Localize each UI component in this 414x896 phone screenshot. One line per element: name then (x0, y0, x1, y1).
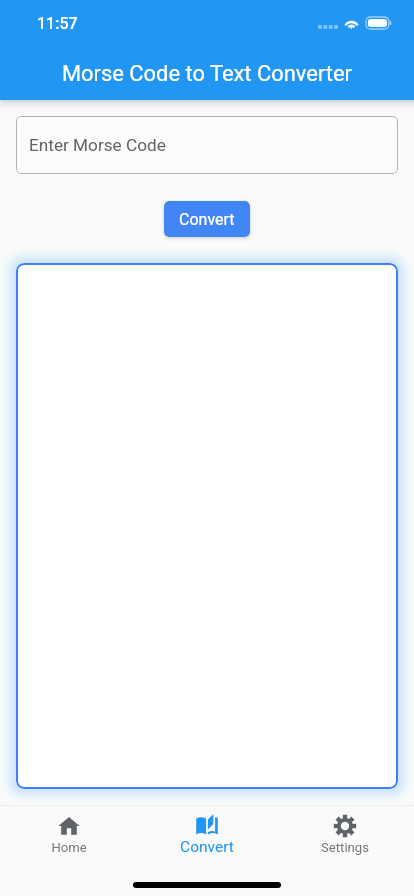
staticText: Settings (321, 840, 369, 855)
staticText: Enter Morse Code (29, 135, 166, 155)
staticText: 11:57 (37, 14, 78, 33)
button[interactable]: Home (0, 814, 138, 855)
button[interactable]: Convert (138, 814, 276, 856)
staticText: Morse Code to Text Converter (62, 61, 352, 87)
staticText: Convert (180, 838, 234, 856)
button[interactable]: Settings (276, 814, 414, 855)
button[interactable]: Convert (164, 201, 250, 237)
button[interactable]: Enter Morse Code (16, 116, 398, 174)
staticText: Convert (179, 210, 235, 229)
staticText: Home (51, 840, 87, 855)
